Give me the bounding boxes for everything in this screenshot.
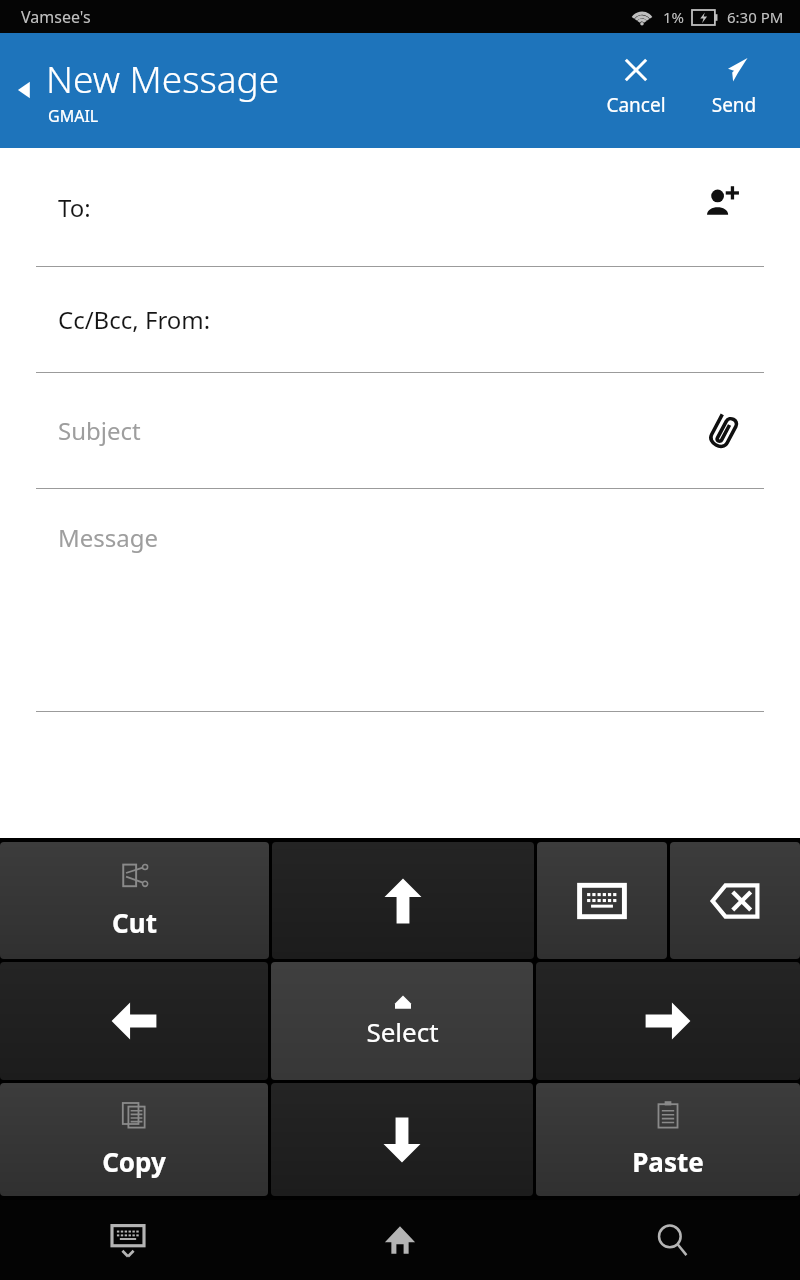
- button[interactable]: Search: [602, 1200, 742, 1280]
- staticText: Subject: [58, 414, 141, 447]
- staticText: To:: [58, 191, 91, 224]
- button[interactable]: Move down: [271, 1083, 533, 1196]
- staticText: Cc/Bcc, From:: [58, 303, 211, 336]
- other: Back: [14, 77, 36, 103]
- staticText: 1%: [663, 7, 685, 27]
- button[interactable]: Show keyboard: [537, 842, 667, 959]
- button[interactable]: Attach file: [702, 410, 744, 452]
- button[interactable]: Move right: [536, 962, 800, 1080]
- button[interactable]: Move up: [272, 842, 534, 959]
- button[interactable]: Send: [696, 51, 772, 122]
- button[interactable]: Subject: [0, 373, 800, 488]
- staticText: Cut: [112, 905, 157, 940]
- button[interactable]: Cancel: [598, 51, 674, 122]
- staticText: Message: [58, 521, 159, 554]
- staticText: GMAIL: [48, 105, 99, 127]
- staticText: New Message: [46, 53, 280, 103]
- staticText: Cancel: [598, 92, 674, 118]
- button[interactable]: Message: [0, 489, 800, 711]
- button[interactable]: Home: [330, 1200, 470, 1280]
- button[interactable]: Select: [271, 962, 533, 1080]
- staticText: Copy: [102, 1144, 166, 1179]
- button[interactable]: Copy: [0, 1083, 268, 1196]
- staticText: 6:30 PM: [727, 7, 784, 27]
- staticText: Vamsee's: [21, 6, 91, 28]
- button[interactable]: Backspace: [670, 842, 800, 959]
- button[interactable]: To:: [0, 148, 800, 266]
- staticText: Send: [696, 92, 772, 118]
- button[interactable]: Cut: [0, 842, 269, 959]
- button[interactable]: Move left: [0, 962, 268, 1080]
- button[interactable]: Back: [14, 53, 280, 127]
- button[interactable]: Hide keyboard: [58, 1200, 198, 1280]
- staticText: Select: [366, 1014, 439, 1049]
- button[interactable]: Cc/Bcc, From:: [0, 267, 800, 372]
- button[interactable]: Add contact: [700, 177, 744, 221]
- staticText: Paste: [632, 1144, 704, 1179]
- button[interactable]: Paste: [536, 1083, 800, 1196]
